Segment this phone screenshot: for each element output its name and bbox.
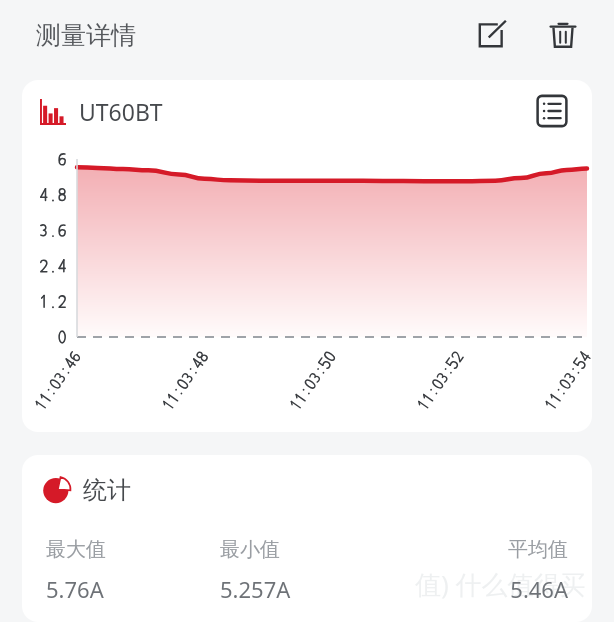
staticText: 5.257A <box>220 574 394 604</box>
staticText: 统计 <box>83 475 131 505</box>
staticText: 值) 什么值得买 <box>415 566 586 602</box>
staticText: 最小值 <box>220 537 394 562</box>
button[interactable]: List <box>530 89 574 133</box>
staticText: 测量详情 <box>36 20 136 51</box>
staticText: 平均值 <box>394 537 568 562</box>
staticText: 5.46A <box>394 574 568 604</box>
button[interactable]: Edit <box>468 12 514 58</box>
staticText: UT60BT <box>79 96 163 127</box>
staticText: 5.76A <box>46 574 220 604</box>
button[interactable]: 统计 <box>42 475 131 505</box>
button[interactable]: UT60BT <box>40 96 163 127</box>
button[interactable]: Delete <box>540 12 586 58</box>
staticText: 最大值 <box>46 537 220 562</box>
